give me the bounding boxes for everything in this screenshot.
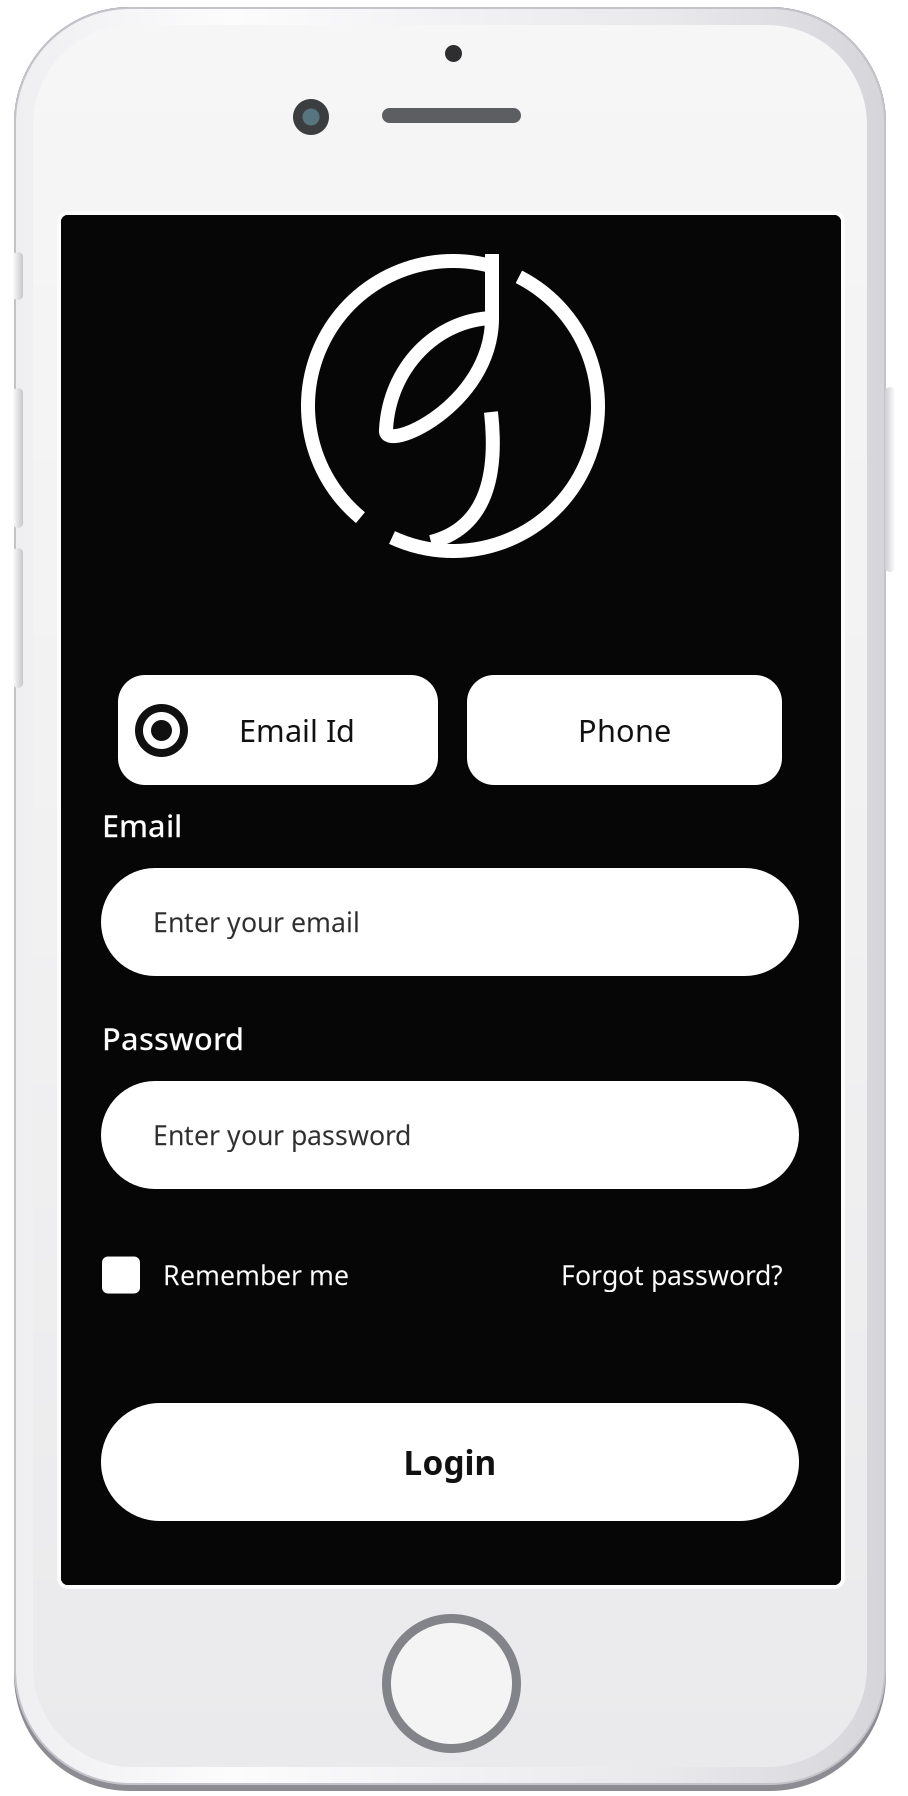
staticText: Email <box>102 805 182 846</box>
button[interactable]: Remember me <box>102 1253 349 1297</box>
staticText: Password <box>102 1018 244 1059</box>
staticText: Phone <box>578 710 671 750</box>
button[interactable]: Email Id <box>118 675 438 785</box>
staticText: Enter your email <box>153 904 360 940</box>
button[interactable]: Forgot password? <box>503 1253 783 1297</box>
staticText: Login <box>403 1440 496 1484</box>
staticText: Email Id <box>239 710 355 750</box>
staticText: Remember me <box>163 1257 349 1293</box>
button[interactable]: Enter your email <box>101 868 799 976</box>
staticText: Forgot password? <box>561 1257 783 1293</box>
button[interactable]: Login <box>101 1403 799 1521</box>
staticText: Enter your password <box>153 1117 411 1153</box>
button[interactable]: Enter your password <box>101 1081 799 1189</box>
button[interactable]: Phone <box>467 675 782 785</box>
